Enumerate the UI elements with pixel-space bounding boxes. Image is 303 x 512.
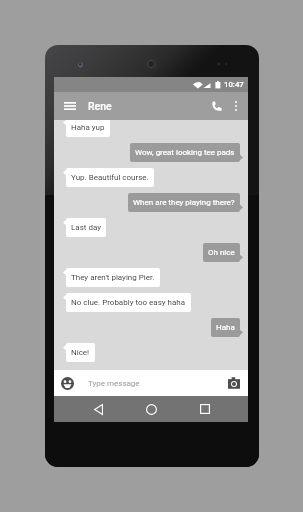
staticText: Nice! (71, 348, 90, 357)
staticText: No clue. Probably too easy haha (71, 298, 186, 307)
button[interactable]: Camera (225, 370, 243, 396)
button[interactable]: Home (136, 396, 166, 422)
button[interactable]: Oh nice (203, 243, 240, 262)
staticText: Type message (88, 379, 140, 388)
staticText: Last day (71, 223, 101, 232)
button[interactable]: Yup. Beautiful course. (66, 168, 154, 187)
button[interactable]: Nice! (66, 343, 95, 362)
staticText: Wow, great looking tee pads (135, 148, 235, 157)
button[interactable]: Wow, great looking tee pads (130, 143, 240, 162)
staticText: They aren't playing Pier. (71, 273, 155, 282)
button[interactable]: Back (83, 396, 113, 422)
button[interactable]: Haha yup (66, 118, 110, 137)
button[interactable]: They aren't playing Pier. (66, 268, 160, 287)
staticText: Yup. Beautiful course. (71, 173, 149, 182)
button[interactable]: When are they playing there? (128, 193, 240, 212)
button[interactable]: More options (229, 92, 243, 120)
button[interactable]: Last day (66, 218, 106, 237)
button[interactable]: Menu (58, 92, 82, 120)
button[interactable]: Recents (190, 396, 220, 422)
button[interactable]: No clue. Probably too easy haha (66, 293, 191, 312)
button[interactable]: Haha (211, 318, 240, 337)
staticText: Oh nice (208, 248, 235, 257)
staticText: When are they playing there? (133, 198, 235, 207)
staticText: Haha (216, 323, 235, 332)
button[interactable]: Call (205, 92, 229, 120)
staticText: 10:47 (224, 80, 244, 89)
button[interactable]: Emoji (59, 370, 75, 396)
staticText: Rene (88, 100, 112, 112)
staticText: Haha yup (71, 123, 105, 132)
